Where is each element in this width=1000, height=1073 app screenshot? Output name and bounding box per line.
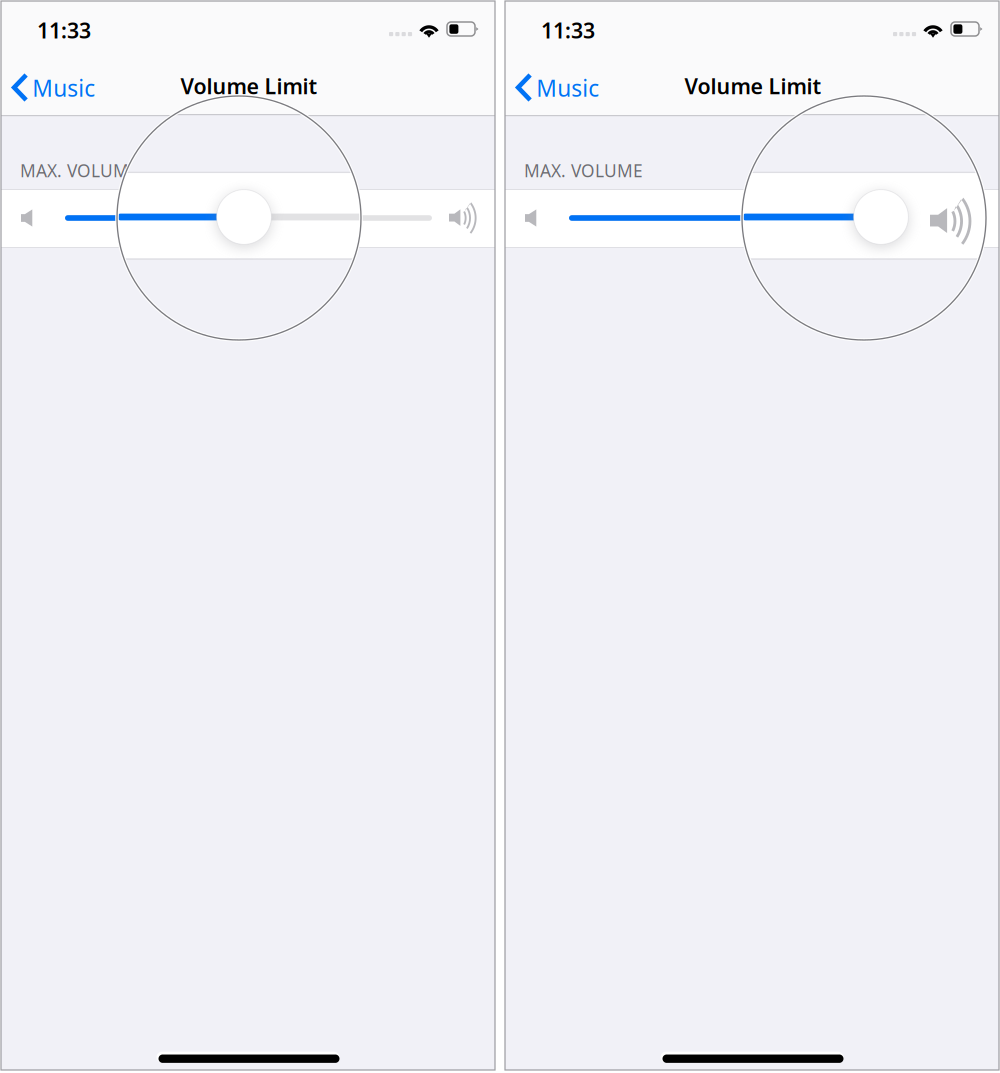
staticText: 11:33 (37, 16, 91, 44)
staticText: Music (32, 73, 95, 103)
staticText: Music (536, 73, 599, 103)
button[interactable]: Music (501, 66, 633, 110)
staticText: Volume Limit (180, 72, 317, 100)
button[interactable]: Maximum volume (505, 189, 999, 248)
staticText: MAX. VOLUME (524, 159, 643, 182)
staticText: Volume Limit (684, 72, 821, 100)
button[interactable]: Maximum volume (1, 189, 495, 248)
staticText: MAX. VOLUME (20, 159, 139, 182)
staticText: 11:33 (541, 16, 595, 44)
button[interactable]: Music (0, 66, 129, 110)
